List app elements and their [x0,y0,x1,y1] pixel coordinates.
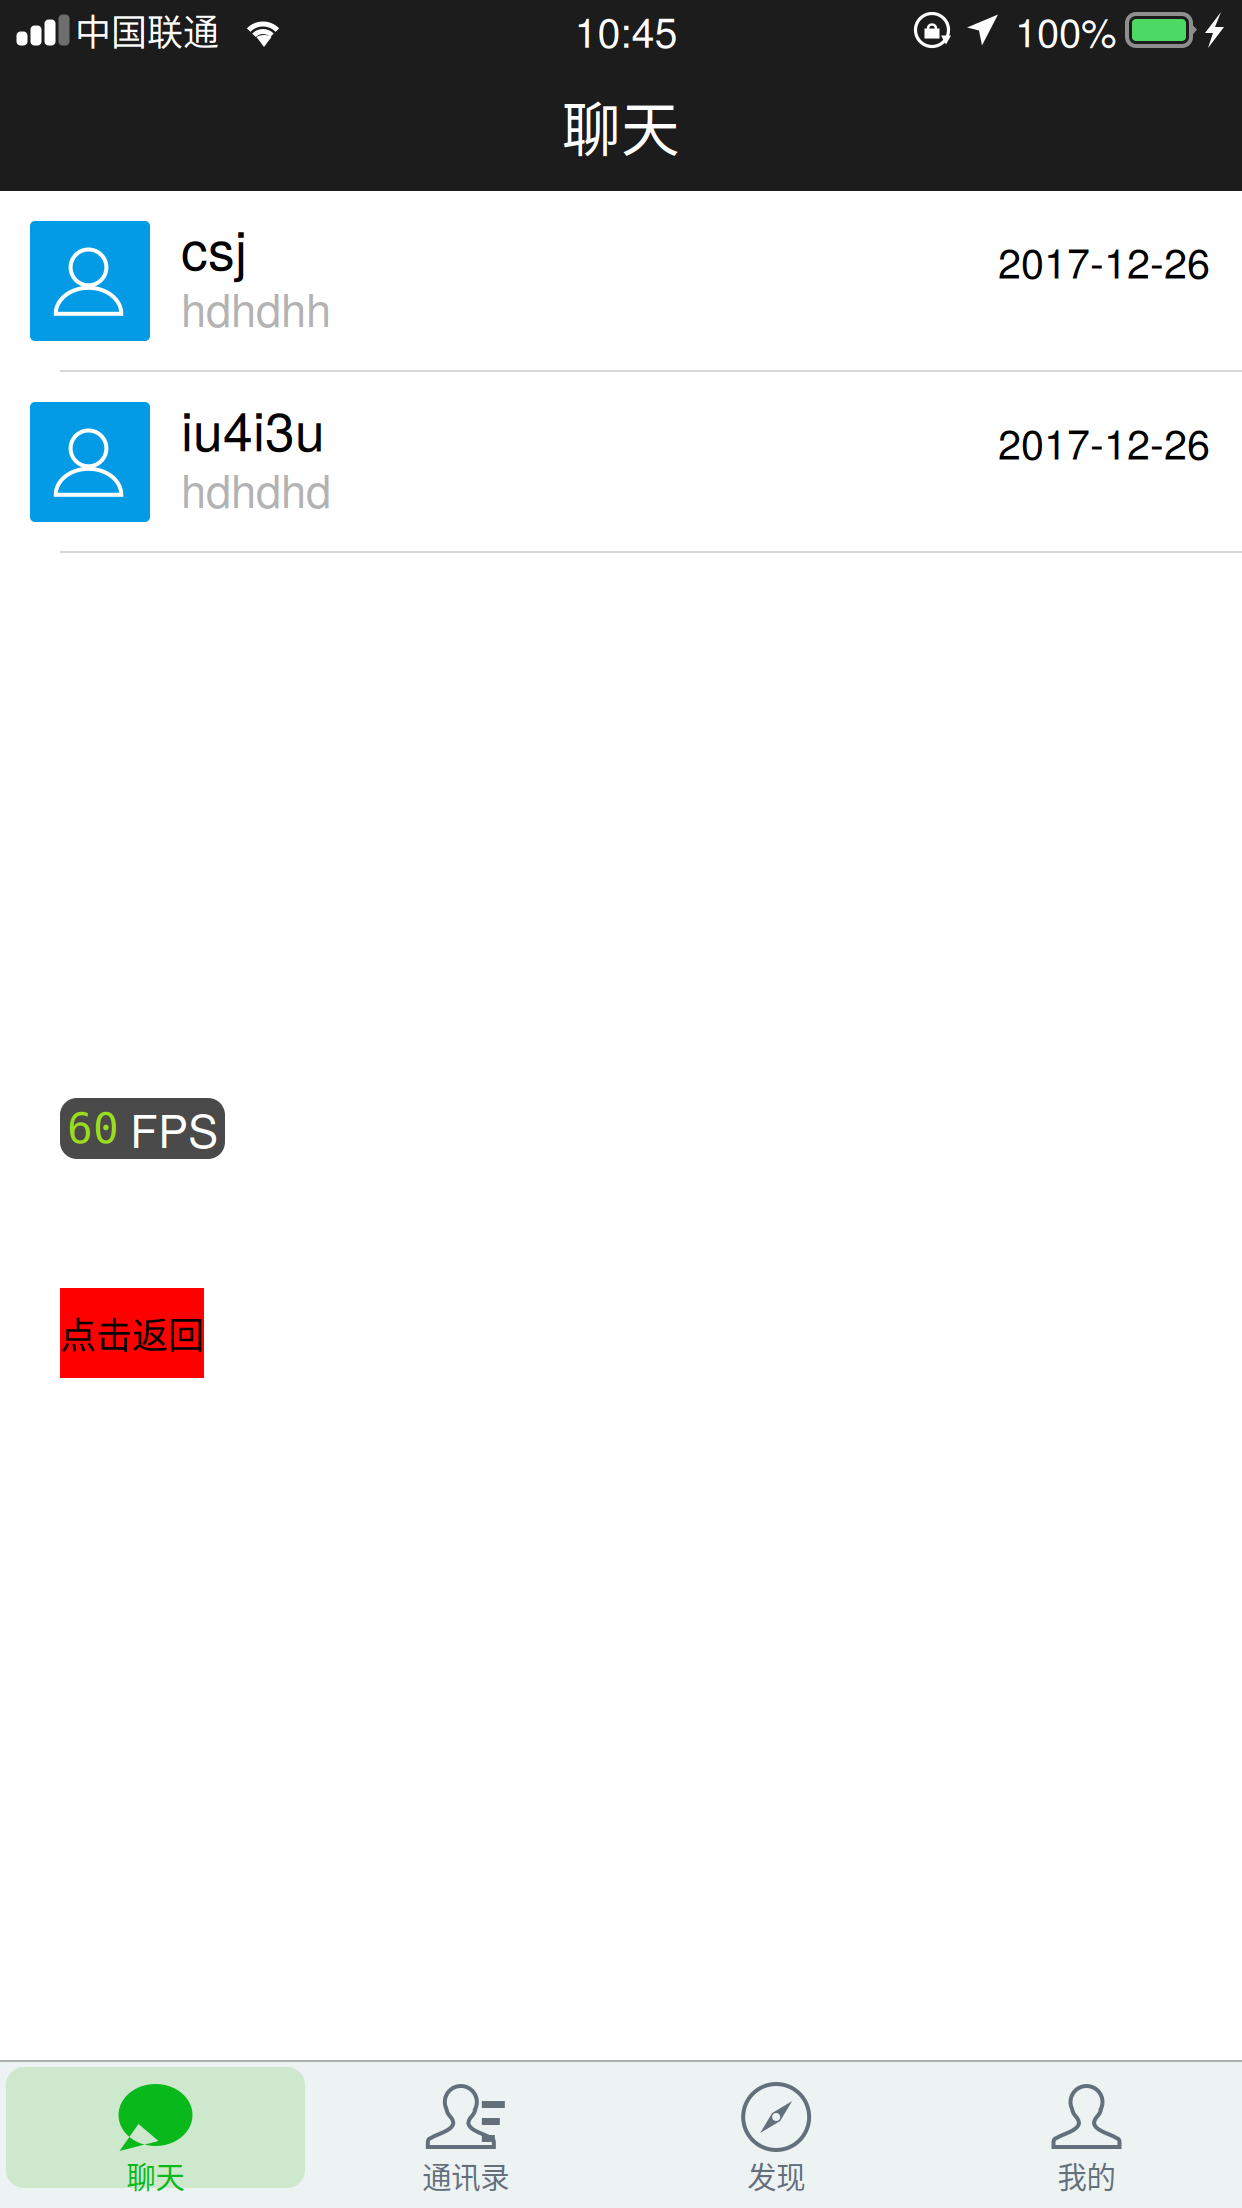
staticText: FPS [130,1096,218,1161]
staticText: 2017-12-26 [998,231,1210,290]
staticText: 点击返回 [60,1307,204,1359]
staticText: csj [181,209,247,285]
button[interactable]: iu4i3u [0,372,1242,553]
button[interactable]: 聊天 [6,2067,305,2188]
staticText: 聊天 [126,2154,184,2196]
staticText: 聊天 [562,83,680,168]
staticText: hdhdhh [181,275,331,340]
staticText: 中国联通 [75,4,219,56]
staticText: 发现 [747,2154,805,2196]
button[interactable]: 发现 [627,2067,926,2188]
staticText: 60 [67,1104,119,1153]
staticText: 2017-12-26 [998,412,1210,471]
staticText: hdhdhd [181,456,331,521]
button[interactable]: 点击返回 [60,1288,204,1378]
staticText: 我的 [1057,2154,1115,2196]
staticText: iu4i3u [181,390,325,466]
staticText: 10:45 [574,0,677,60]
button[interactable]: csj [0,191,1242,372]
staticText: 通讯录 [422,2154,509,2196]
staticText: 100% [1015,1,1117,59]
button[interactable]: 我的 [937,2067,1236,2188]
button[interactable]: 通讯录 [316,2067,615,2188]
